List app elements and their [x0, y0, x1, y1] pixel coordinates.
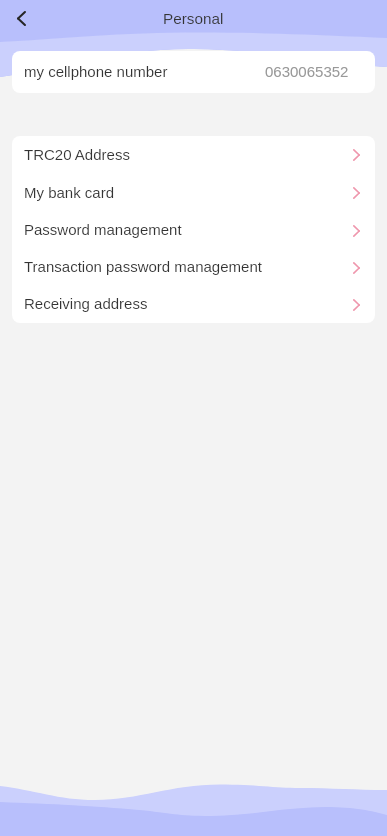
staticText: Password management	[24, 221, 182, 238]
button[interactable]: Receiving address	[12, 286, 375, 323]
button[interactable]: TRC20 Address	[12, 136, 375, 174]
staticText: Receiving address	[24, 295, 148, 312]
button[interactable]: My bank card	[12, 174, 375, 212]
staticText: Personal	[163, 10, 224, 27]
staticText: Transaction password management	[24, 258, 262, 275]
button[interactable]: Transaction password management	[12, 249, 375, 286]
staticText: My bank card	[24, 184, 115, 201]
staticText: 0630065352	[265, 63, 349, 80]
staticText: my cellphone number	[24, 63, 168, 80]
button[interactable]: Password management	[12, 212, 375, 249]
staticText: TRC20 Address	[24, 146, 130, 163]
button[interactable]: my cellphone number	[12, 51, 375, 93]
button[interactable]: Back	[6, 3, 36, 33]
